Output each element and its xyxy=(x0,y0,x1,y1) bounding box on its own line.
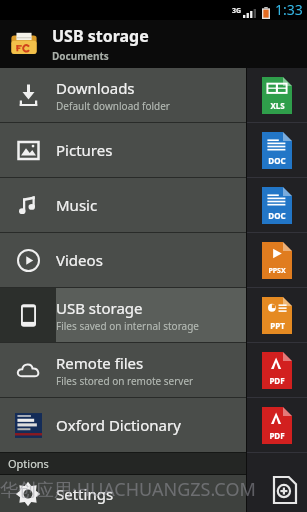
staticText: Oxford Dictionary xyxy=(56,415,181,435)
other: Downloads xyxy=(16,83,41,108)
staticText: PDF xyxy=(269,375,285,386)
button[interactable]: DOC xyxy=(247,123,307,177)
other: Oxford Dictionary xyxy=(15,412,42,439)
staticText: PPT xyxy=(270,320,285,331)
button[interactable]: Remote files xyxy=(0,343,246,397)
staticText: Remote files xyxy=(56,353,144,373)
staticText: Music xyxy=(56,195,98,215)
other: Remote files xyxy=(16,358,41,383)
staticText: Videos xyxy=(56,250,103,270)
button[interactable]: PDF xyxy=(247,343,307,397)
button[interactable]: PDF xyxy=(247,398,307,452)
staticText: DOC xyxy=(268,210,286,221)
staticText: USB storage xyxy=(52,25,149,47)
button[interactable]: PPT xyxy=(247,288,307,342)
staticText: USB storage xyxy=(56,298,143,318)
staticText: Default download folder xyxy=(56,99,170,113)
staticText: Downloads xyxy=(56,78,135,98)
button[interactable]: Downloads xyxy=(0,68,246,122)
staticText: Settings xyxy=(56,484,114,504)
other: Settings xyxy=(15,481,41,507)
staticText: Pictures xyxy=(56,140,113,160)
button[interactable]: New file xyxy=(263,468,307,512)
staticText: 华创应用·HUACHUANGZS.COM xyxy=(0,477,256,502)
staticText: Documents xyxy=(52,49,109,63)
other: Music xyxy=(16,193,41,218)
staticText: Files stored on remote server xyxy=(56,374,194,388)
staticText: 1:33 xyxy=(275,0,303,19)
staticText: Options xyxy=(8,456,49,471)
button[interactable]: Pictures xyxy=(0,123,246,177)
staticText: 3G xyxy=(232,6,242,16)
button[interactable]: Videos xyxy=(0,233,246,287)
button[interactable]: DOC xyxy=(247,178,307,232)
button[interactable]: XLS xyxy=(247,68,307,122)
staticText: Files saved on internal storage xyxy=(56,319,199,333)
staticText: XLS xyxy=(270,100,285,111)
button[interactable]: USB storage xyxy=(0,288,246,342)
other: USB storage xyxy=(16,303,41,328)
button[interactable]: Oxford Dictionary xyxy=(0,398,246,452)
button[interactable]: Settings xyxy=(0,475,246,512)
button[interactable]: Music xyxy=(0,178,246,232)
staticText: PPSX xyxy=(268,266,286,276)
button[interactable]: USB storage xyxy=(0,20,307,68)
staticText: PDF xyxy=(269,430,285,441)
button[interactable]: PPSX xyxy=(247,233,307,287)
other: Pictures xyxy=(16,138,41,163)
staticText: DOC xyxy=(268,155,286,166)
other: Videos xyxy=(16,248,41,273)
